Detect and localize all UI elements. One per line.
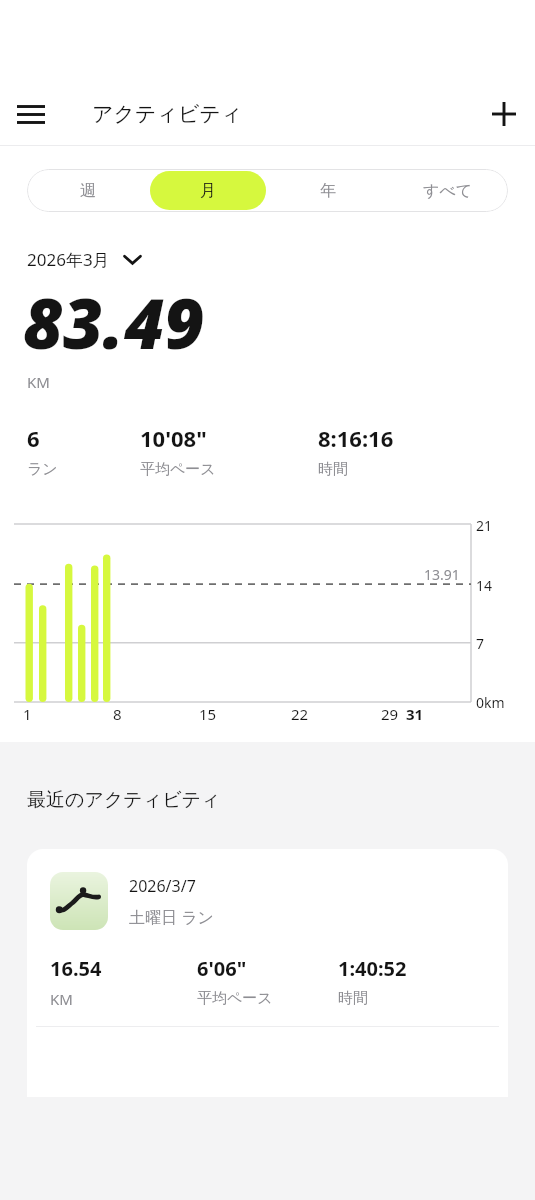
staticText: 平均ペース bbox=[197, 989, 273, 1008]
staticText: 週 bbox=[80, 181, 96, 201]
staticText: 平均ペース bbox=[140, 460, 216, 479]
staticText: ラン bbox=[27, 460, 58, 479]
staticText: 14 bbox=[476, 576, 493, 595]
staticText: 29 bbox=[381, 704, 399, 724]
button[interactable]: すべて bbox=[390, 171, 506, 210]
staticText: 月 bbox=[200, 181, 216, 201]
staticText: 2026/3/7 bbox=[129, 875, 196, 897]
staticText: 10'08" bbox=[140, 423, 207, 453]
staticText: 最近のアクティビティ bbox=[27, 788, 221, 812]
other: Route map bbox=[50, 872, 108, 930]
staticText: 21 bbox=[476, 516, 493, 535]
staticText: 時間 bbox=[318, 460, 348, 479]
button[interactable]: Menu bbox=[0, 83, 62, 145]
staticText: 15 bbox=[199, 704, 217, 724]
staticText: 8 bbox=[113, 704, 122, 724]
staticText: 7 bbox=[476, 634, 485, 653]
staticText: 0km bbox=[476, 693, 505, 712]
staticText: 31 bbox=[406, 704, 424, 724]
staticText: 8:16:16 bbox=[318, 423, 394, 453]
staticText: KM bbox=[50, 989, 73, 1009]
button[interactable]: Add activity bbox=[473, 83, 535, 145]
staticText: 1 bbox=[23, 704, 32, 724]
staticText: 年 bbox=[320, 181, 336, 201]
staticText: 2026年3月 bbox=[27, 248, 110, 271]
button[interactable]: 2026年3月 bbox=[27, 248, 142, 271]
staticText: 時間 bbox=[338, 989, 368, 1008]
staticText: 83.49 bbox=[23, 275, 205, 369]
button[interactable]: 週 bbox=[29, 171, 146, 210]
staticText: 13.91 bbox=[424, 565, 460, 584]
staticText: 22 bbox=[291, 704, 309, 724]
button[interactable]: 月 bbox=[150, 171, 266, 210]
button[interactable]: 年 bbox=[270, 171, 386, 210]
staticText: すべて bbox=[423, 181, 473, 201]
staticText: 6 bbox=[27, 423, 40, 453]
staticText: 1:40:52 bbox=[338, 955, 407, 982]
staticText: KM bbox=[27, 372, 50, 392]
button[interactable]: Route map bbox=[27, 849, 508, 1097]
staticText: 16.54 bbox=[50, 955, 102, 982]
staticText: 6'06" bbox=[197, 955, 247, 982]
staticText: アクティビティ bbox=[92, 101, 243, 127]
staticText: 土曜日 ラン bbox=[129, 906, 214, 928]
